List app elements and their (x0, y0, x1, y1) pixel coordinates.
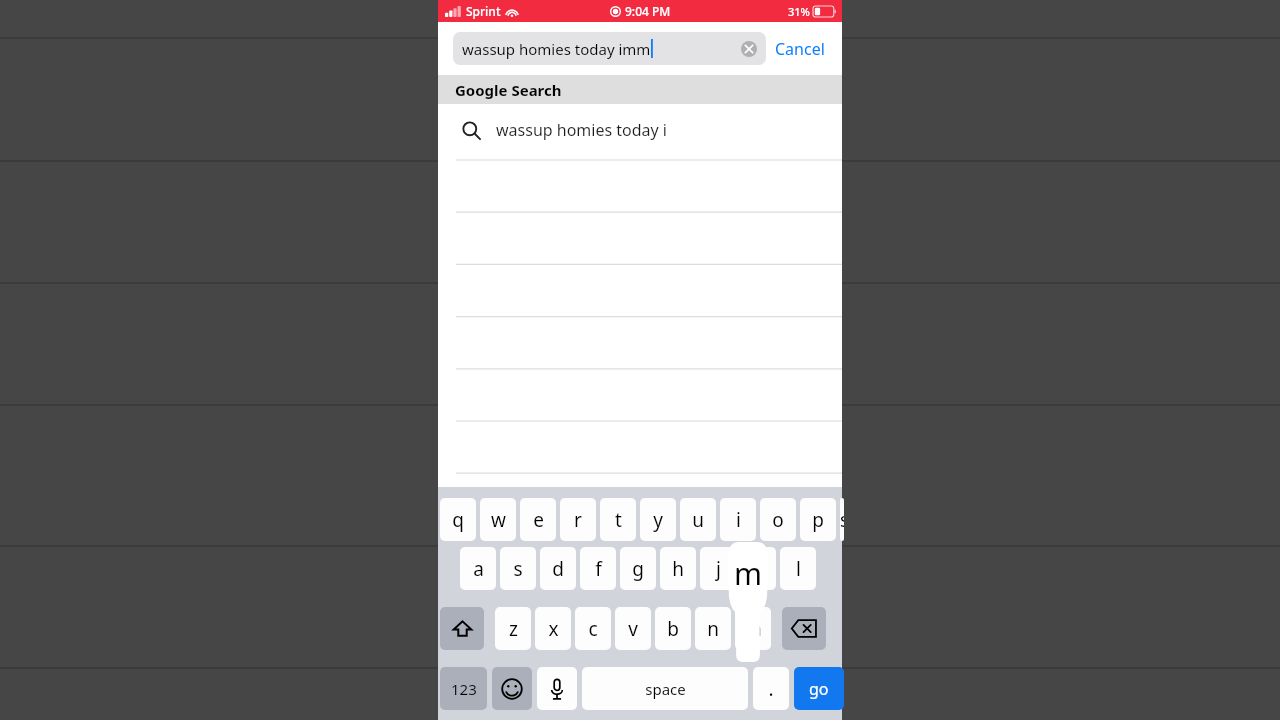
button[interactable]: s (500, 547, 536, 590)
button[interactable]: q (440, 498, 476, 541)
staticText: c (588, 616, 598, 642)
staticText: z (509, 616, 518, 642)
button[interactable]: Dictation (537, 667, 577, 710)
button[interactable]: y (640, 498, 676, 541)
staticText: s (840, 507, 844, 533)
button[interactable]: j (700, 547, 736, 590)
staticText: x (548, 616, 559, 642)
staticText: u (692, 507, 704, 533)
button[interactable]: d (540, 547, 576, 590)
button[interactable]: 123 (440, 667, 487, 710)
button[interactable]: l (780, 547, 816, 590)
button[interactable]: w (480, 498, 516, 541)
staticText: q (452, 507, 464, 533)
button[interactable]: space (582, 667, 748, 710)
staticText: m (734, 553, 763, 594)
button[interactable]: go (794, 667, 844, 710)
staticText: 123 (451, 679, 477, 699)
button[interactable]: Shift (440, 607, 484, 650)
staticText: . (768, 676, 774, 702)
button[interactable]: Clear text (741, 41, 757, 57)
button[interactable]: Emoji (492, 667, 532, 710)
staticText: space (645, 679, 686, 699)
staticText: 9:04 PM (625, 3, 671, 19)
staticText: o (772, 507, 784, 533)
staticText: j (716, 556, 721, 582)
staticText: d (552, 556, 564, 582)
button[interactable]: v (615, 607, 651, 650)
button[interactable]: x (535, 607, 571, 650)
staticText: e (533, 507, 544, 533)
button[interactable]: n (695, 607, 731, 650)
staticText: h (672, 556, 684, 582)
staticText: f (595, 556, 602, 582)
button[interactable]: Cancel (766, 32, 834, 66)
button[interactable]: a (460, 547, 496, 590)
button[interactable]: e (520, 498, 556, 541)
button[interactable]: k (740, 547, 776, 590)
button[interactable]: i (720, 498, 756, 541)
staticText: b (667, 616, 679, 642)
staticText: v (628, 616, 638, 642)
button[interactable]: c (575, 607, 611, 650)
staticText: i (736, 507, 741, 533)
button[interactable]: f (580, 547, 616, 590)
staticText: s (513, 556, 523, 582)
button[interactable]: . (753, 667, 789, 710)
staticText: w (491, 507, 506, 533)
staticText: n (707, 616, 719, 642)
button[interactable]: r (560, 498, 596, 541)
staticText: k (753, 556, 764, 582)
button[interactable]: z (495, 607, 531, 650)
staticText: g (632, 556, 644, 582)
staticText: l (796, 556, 801, 582)
staticText: a (473, 556, 484, 582)
button[interactable]: o (760, 498, 796, 541)
button[interactable]: Backspace (782, 607, 826, 650)
button[interactable]: b (655, 607, 691, 650)
button[interactable]: u (680, 498, 716, 541)
staticText: m (744, 616, 762, 642)
button[interactable]: p (800, 498, 836, 541)
button[interactable]: h (660, 547, 696, 590)
staticText: y (653, 507, 663, 533)
staticText: wassup homies today imm (462, 39, 651, 59)
button[interactable]: t (600, 498, 636, 541)
staticText: Google Search (455, 80, 562, 100)
button[interactable]: wassup homies today imm (453, 32, 766, 65)
staticText: wassup homies today i (496, 119, 667, 141)
staticText: Cancel (775, 38, 825, 60)
staticText: go (809, 678, 829, 700)
button[interactable]: s (840, 498, 844, 541)
staticText: Sprint (466, 3, 501, 19)
staticText: p (812, 507, 824, 533)
staticText: r (574, 507, 582, 533)
button[interactable]: m (735, 607, 771, 650)
button[interactable]: Search (438, 104, 842, 156)
staticText: 31% (788, 4, 810, 19)
staticText: t (615, 507, 622, 533)
button[interactable]: g (620, 547, 656, 590)
other: Search (462, 121, 481, 140)
